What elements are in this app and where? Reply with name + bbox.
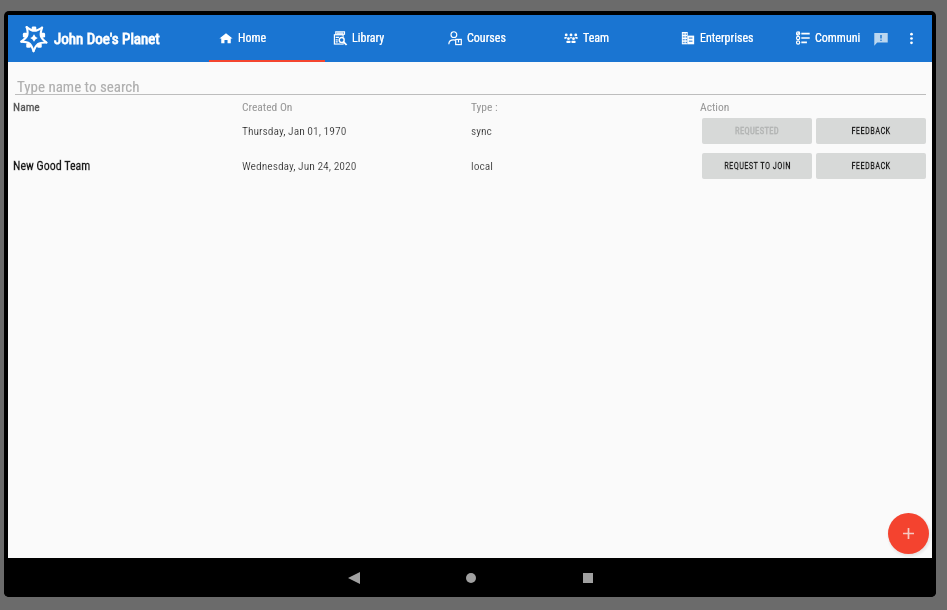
button[interactable]: John Doe's Planet logo: [20, 24, 48, 52]
staticText: Action: [700, 100, 730, 113]
staticText: Communi: [815, 31, 861, 45]
button[interactable]: New Good Team: [8, 148, 932, 183]
staticText: Thursday, Jan 01, 1970: [242, 124, 347, 137]
button[interactable]: Add: [888, 513, 929, 554]
button[interactable]: FEEDBACK: [816, 118, 926, 144]
button[interactable]: Library: [325, 15, 441, 62]
staticText: REQUESTED: [735, 126, 779, 136]
staticText: FEEDBACK: [851, 126, 891, 136]
button[interactable]: Recent apps: [564, 558, 612, 597]
button[interactable]: Type name to search: [8, 62, 932, 95]
staticText: REQUEST TO JOIN: [724, 161, 791, 171]
button[interactable]: Back: [330, 558, 378, 597]
staticText: FEEDBACK: [851, 161, 891, 171]
button[interactable]: Messages: [866, 24, 895, 53]
staticText: Type name to search: [17, 78, 140, 96]
staticText: local: [471, 159, 493, 172]
staticText: Type :: [471, 100, 498, 113]
staticText: sync: [471, 124, 492, 137]
staticText: Home: [238, 31, 267, 45]
button[interactable]: More options: [897, 24, 926, 53]
staticText: Name: [13, 100, 40, 113]
staticText: New Good Team: [13, 159, 91, 173]
button[interactable]: Communi: [789, 15, 881, 62]
staticText: Created On: [242, 100, 293, 113]
staticText: John Doe's Planet: [54, 30, 160, 48]
staticText: Enterprises: [700, 31, 754, 45]
staticText: Team: [583, 31, 610, 45]
staticText: Wednesday, Jun 24, 2020: [242, 159, 357, 172]
staticText: Courses: [467, 31, 506, 45]
button[interactable]: Team: [557, 15, 673, 62]
button[interactable]: REQUEST TO JOIN: [702, 153, 812, 179]
button[interactable]: Home: [209, 15, 325, 62]
button[interactable]: REQUESTED: [702, 118, 812, 144]
button[interactable]: FEEDBACK: [816, 153, 926, 179]
button[interactable]: Enterprises: [673, 15, 789, 62]
button[interactable]: Courses: [441, 15, 557, 62]
staticText: Library: [352, 31, 385, 45]
button[interactable]: Home: [447, 558, 495, 597]
button[interactable]: Thursday, Jan 01, 1970: [8, 113, 932, 148]
